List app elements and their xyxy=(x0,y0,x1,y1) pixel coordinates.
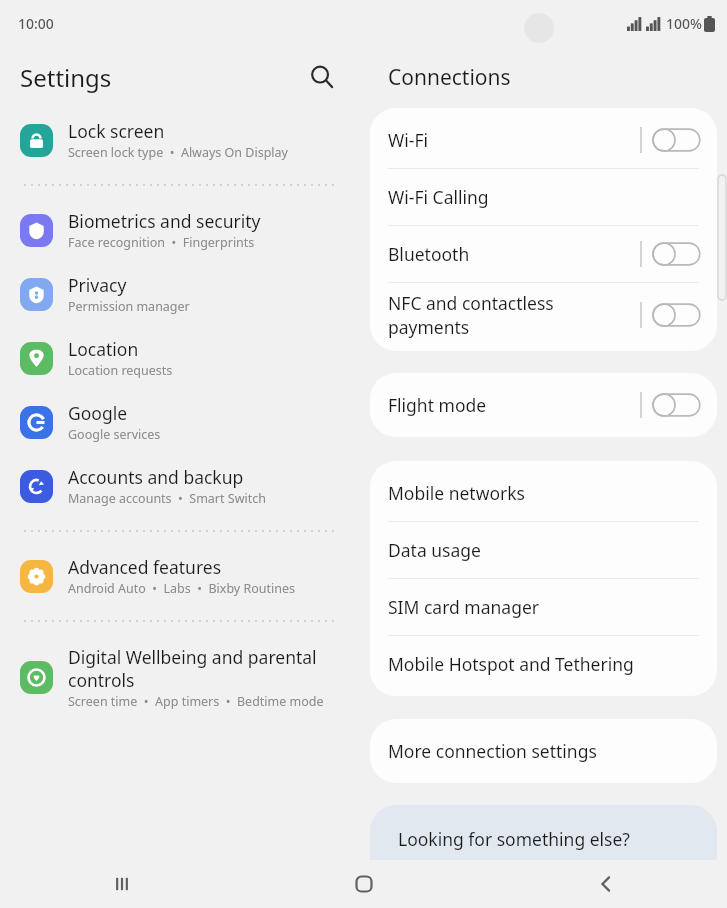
staticText: Wi-Fi Calling xyxy=(388,185,695,209)
button[interactable]: Lock screen xyxy=(0,108,360,172)
button[interactable]: Location xyxy=(0,326,360,390)
button[interactable]: Flight mode toggle xyxy=(639,385,703,425)
staticText: Digital Wellbeing and parental controls xyxy=(68,645,346,692)
staticText: Bluetooth xyxy=(388,242,631,266)
staticText: Biometrics and security xyxy=(68,209,261,233)
staticText: SIM card manager xyxy=(388,595,695,619)
staticText: Mobile networks xyxy=(388,481,695,505)
button[interactable]: Mobile Hotspot and Tethering xyxy=(370,636,717,692)
button[interactable]: Data usage xyxy=(370,522,717,578)
button[interactable]: Mobile networks xyxy=(370,465,717,521)
staticText: Settings xyxy=(20,61,112,94)
staticText: NFC and contactless payments xyxy=(388,291,631,339)
button[interactable]: NFC and contactless payments toggle xyxy=(639,295,703,335)
button[interactable]: Advanced features xyxy=(0,544,360,608)
staticText: Accounts and backup xyxy=(68,465,244,489)
staticText: Location xyxy=(68,337,139,361)
button[interactable]: Wi-Fi toggle xyxy=(639,120,703,160)
button[interactable]: Home xyxy=(243,860,485,908)
staticText: Privacy xyxy=(68,273,127,297)
button[interactable]: Digital Wellbeing and parental controls xyxy=(0,634,360,721)
staticText: Lock screen xyxy=(68,119,165,143)
button[interactable]: SIM card manager xyxy=(370,579,717,635)
button[interactable]: Bluetooth xyxy=(370,226,717,282)
staticText: 10:00 xyxy=(18,14,54,33)
button[interactable]: Flight mode xyxy=(370,377,717,433)
staticText: Android Auto • Labs • Bixby Routines xyxy=(68,580,296,597)
staticText: Advanced features xyxy=(68,555,222,579)
staticText: Location requests xyxy=(68,362,173,379)
staticText: Connections xyxy=(388,63,511,92)
button[interactable]: Privacy xyxy=(0,262,360,326)
button[interactable]: Back xyxy=(485,860,727,908)
button[interactable]: Accounts and backup xyxy=(0,454,360,518)
staticText: Screen time • App timers • Bedtime mode xyxy=(68,693,324,710)
staticText: Wi-Fi xyxy=(388,128,631,152)
button[interactable]: Bluetooth toggle xyxy=(639,234,703,274)
staticText: Google services xyxy=(68,426,161,443)
button[interactable]: Search xyxy=(300,55,344,99)
staticText: Flight mode xyxy=(388,393,631,417)
staticText: Google xyxy=(68,401,128,425)
staticText: Looking for something else? xyxy=(398,827,630,851)
button[interactable]: Biometrics and security xyxy=(0,198,360,262)
button[interactable]: Recents xyxy=(0,860,243,908)
staticText: Permission manager xyxy=(68,298,190,315)
staticText: Face recognition • Fingerprints xyxy=(68,234,255,251)
button[interactable]: Wi-Fi xyxy=(370,112,717,168)
staticText: Data usage xyxy=(388,538,695,562)
button[interactable]: Wi-Fi Calling xyxy=(370,169,717,225)
staticText: Manage accounts • Smart Switch xyxy=(68,490,266,507)
staticText: More connection settings xyxy=(388,739,695,763)
button[interactable]: Google xyxy=(0,390,360,454)
button[interactable]: NFC and contactless payments xyxy=(370,283,717,347)
button[interactable]: Looking for something else? xyxy=(370,805,717,885)
staticText: Mobile Hotspot and Tethering xyxy=(388,652,695,676)
button[interactable]: More connection settings xyxy=(370,723,717,779)
staticText: 100% xyxy=(666,14,702,33)
staticText: Screen lock type • Always On Display xyxy=(68,144,288,161)
